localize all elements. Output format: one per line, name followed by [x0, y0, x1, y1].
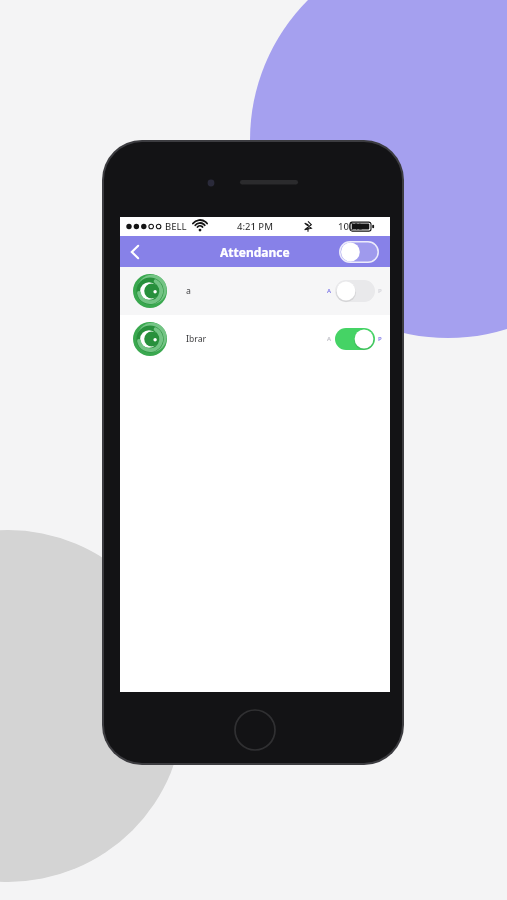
staticText: Ibrar — [186, 333, 327, 345]
staticText: 4:21 PM — [237, 220, 273, 233]
button[interactable]: Ibrar — [120, 315, 390, 363]
button[interactable]: a — [120, 267, 390, 315]
staticText: Attendance — [220, 244, 290, 260]
button[interactable]: Back — [120, 237, 150, 267]
staticText: BELL — [165, 220, 187, 233]
button[interactable]: Attendance toggle for Ibrar — [335, 328, 375, 350]
staticText: A — [327, 287, 332, 295]
staticText: P — [378, 287, 382, 295]
staticText: 100% — [338, 220, 363, 233]
staticText: P — [378, 335, 382, 343]
button[interactable]: Attendance toggle for a — [335, 280, 375, 302]
staticText: a — [186, 285, 327, 297]
staticText: A — [327, 335, 332, 343]
button[interactable]: Toggle all — [339, 241, 379, 263]
